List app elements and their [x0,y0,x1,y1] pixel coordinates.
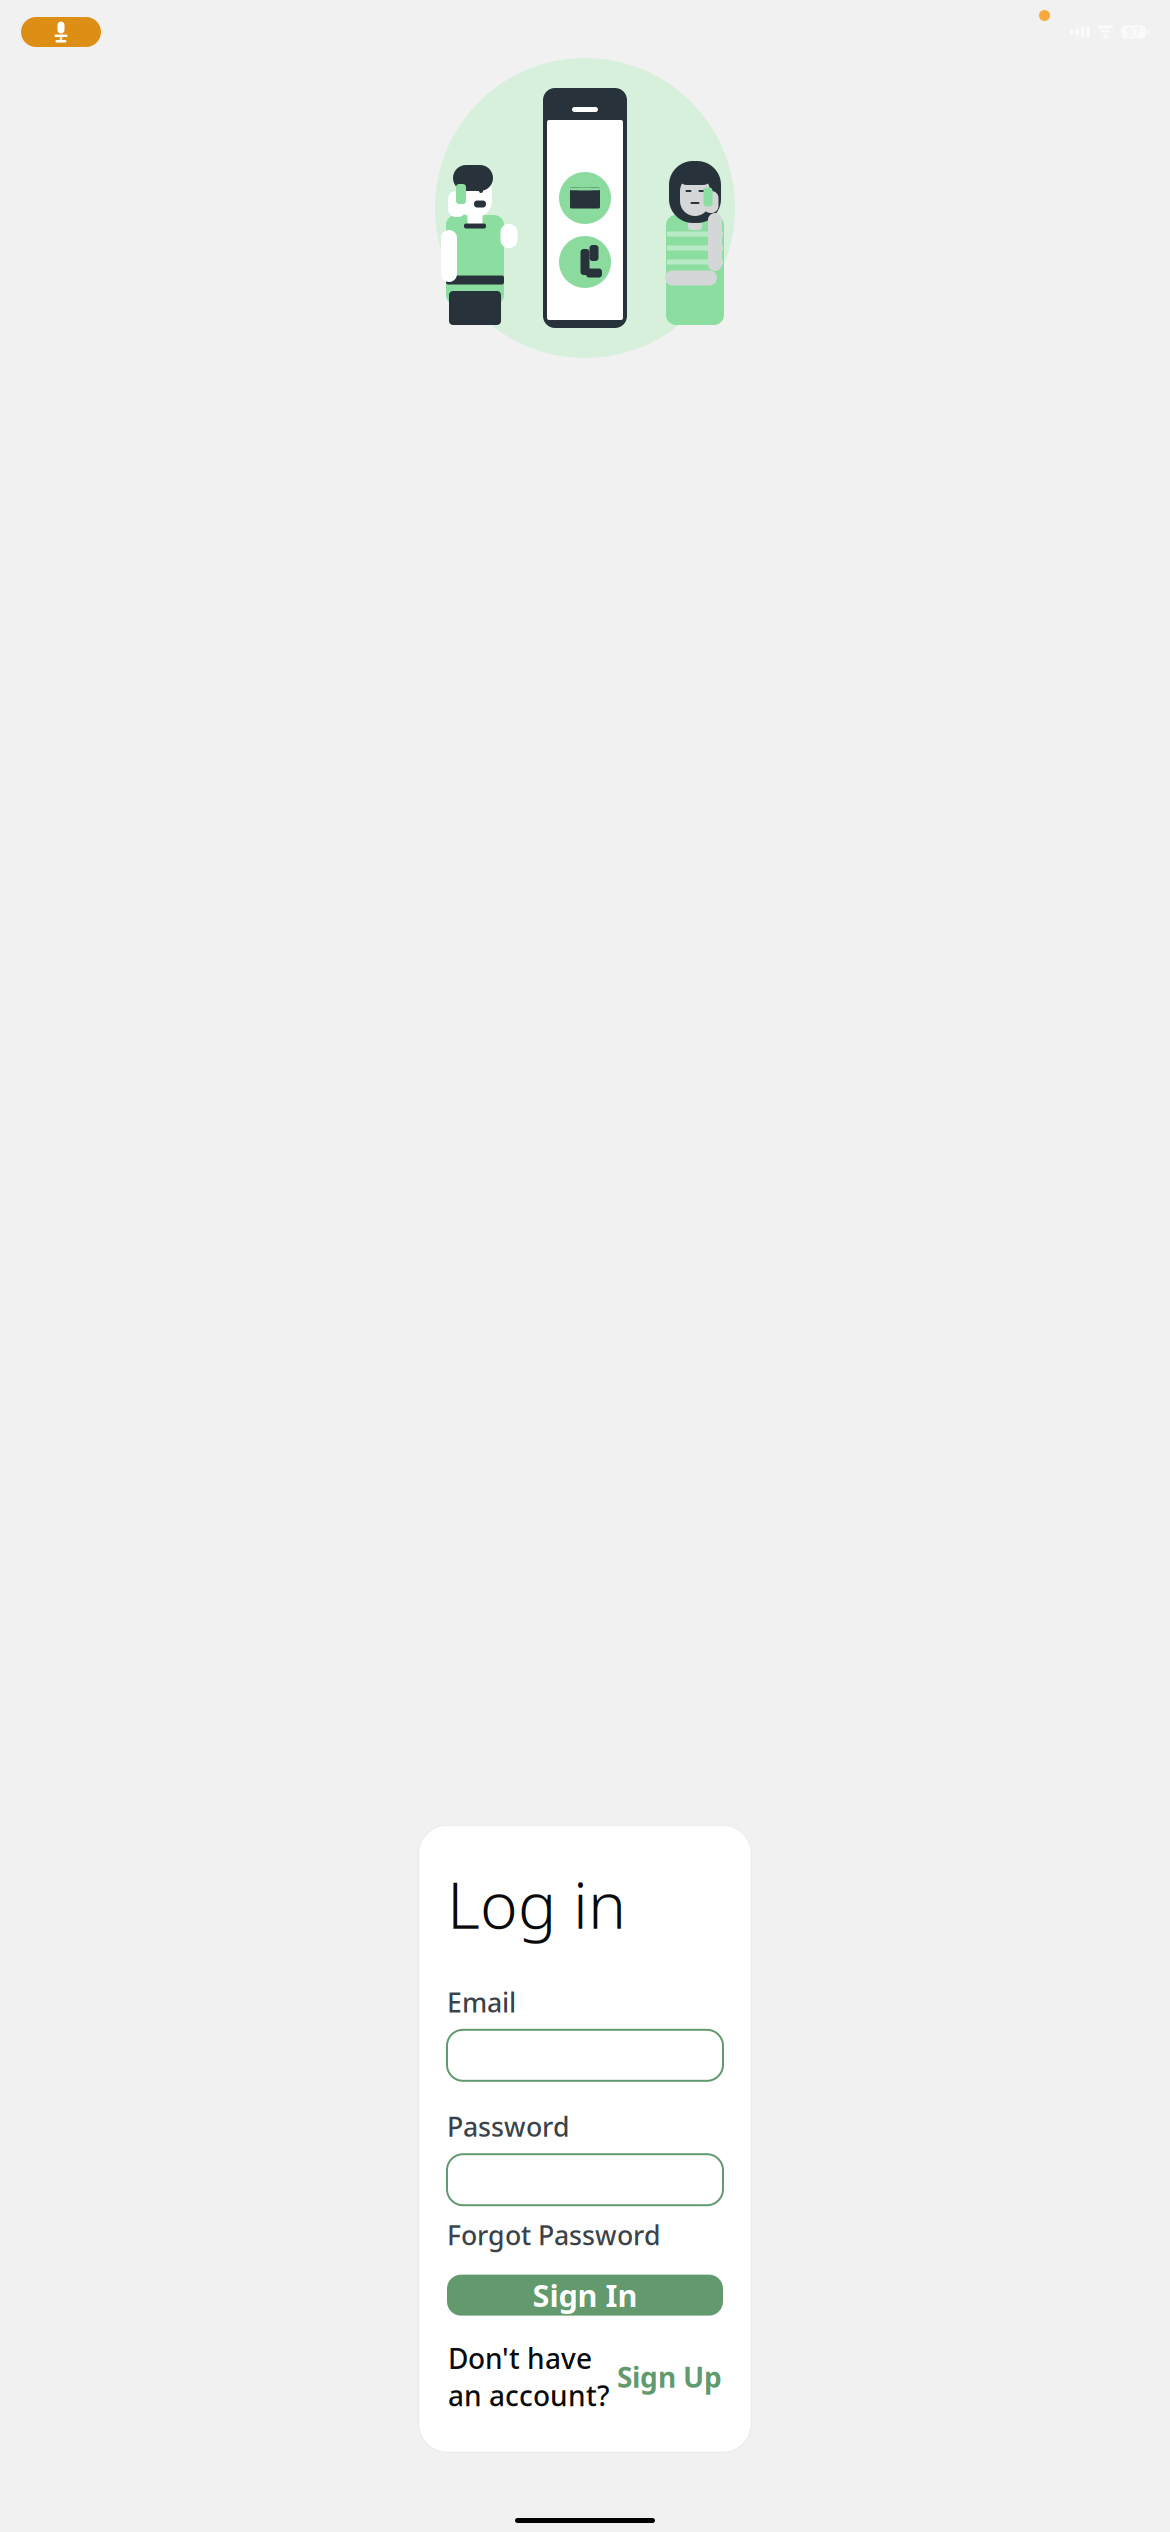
staticText: Log in [447,1861,626,1946]
staticText: Forgot Password [447,2217,661,2253]
staticText: Email [447,1984,516,2020]
button[interactable]: Sign In [447,2275,723,2316]
staticText: Sign Up [617,2358,722,2395]
button[interactable]: Forgot Password [447,2213,661,2257]
button[interactable]: Microphone in use [21,17,101,47]
staticText: Sign In [532,2275,637,2315]
staticText: 97 [1126,24,1140,40]
button[interactable]: Don't have an account? [447,2336,723,2418]
staticText: Don't have an account? [448,2340,610,2414]
staticText: Password [447,2109,570,2144]
